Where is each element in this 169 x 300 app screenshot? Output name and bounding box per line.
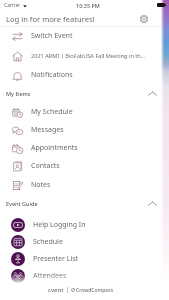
staticText: 2021 ARMI | BioFabUSA Fall Meeting in th… (31, 52, 146, 60)
staticText: Contacts (31, 161, 60, 171)
staticText: Event Guide (6, 200, 38, 207)
staticText: Appointments (31, 143, 78, 153)
staticText: Notes (31, 180, 51, 190)
button[interactable]: Presenter List (0, 250, 161, 267)
button[interactable]: Switch Event (0, 27, 161, 45)
staticText: Carrier (4, 2, 21, 9)
staticText: Notifications (31, 70, 73, 80)
button[interactable]: Appointments (0, 139, 161, 157)
staticText: My Schedule (31, 107, 73, 117)
staticText: Log in for more features! (6, 14, 95, 24)
staticText: Switch Event (31, 31, 73, 41)
button[interactable]: Contacts (0, 157, 161, 175)
staticText: cvent (48, 286, 64, 294)
button[interactable]: My Schedule (0, 103, 161, 121)
button[interactable]: Messages (0, 121, 161, 139)
button[interactable]: Notes (0, 176, 161, 194)
staticText: 10:35 PM (76, 2, 100, 9)
staticText: My Items (6, 90, 31, 97)
staticText: Help Logging In (33, 220, 86, 230)
button[interactable]: Attendees (0, 267, 161, 284)
staticText: Attendees (33, 271, 67, 281)
button[interactable]: Help Logging In (0, 216, 161, 233)
staticText: Schedule (33, 237, 63, 247)
staticText: Presenter List (33, 254, 79, 264)
button[interactable]: Notifications (0, 66, 161, 84)
button[interactable]: 2021 ARMI | BioFabUSA Fall Meeting in th… (0, 47, 161, 65)
staticText: CrowdCompass (76, 287, 114, 294)
button[interactable]: Settings (137, 12, 150, 25)
button[interactable]: Event Guide (0, 195, 161, 211)
button[interactable]: My Items (0, 85, 161, 101)
staticText: Messages (31, 125, 64, 135)
button[interactable]: Schedule (0, 233, 161, 250)
